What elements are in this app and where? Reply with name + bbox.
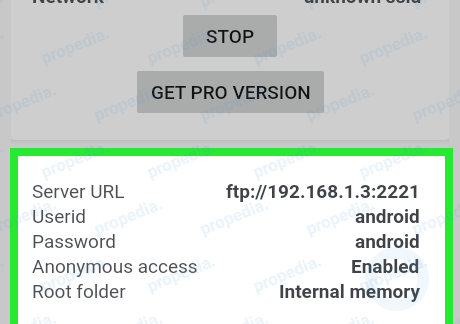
staticText: propedia. — [144, 250, 219, 296]
staticText: propedia. — [197, 0, 272, 11]
staticText: propedia. — [303, 307, 378, 324]
staticText: propedia. — [91, 307, 166, 324]
button[interactable]: Anonymous access — [32, 253, 420, 278]
staticText: Root folder — [32, 280, 126, 302]
staticText: propedia. — [409, 307, 460, 324]
staticText: Userid — [32, 205, 86, 227]
staticText: propedia. — [0, 307, 60, 324]
button[interactable]: Userid — [32, 203, 420, 228]
button[interactable]: Root folder — [32, 278, 420, 303]
staticText: propedia. — [356, 250, 431, 296]
staticText: Network — [32, 0, 104, 7]
staticText: propedia. — [91, 193, 166, 239]
staticText: propedia. — [250, 250, 325, 296]
staticText: propedia. — [91, 79, 166, 125]
staticText: GET PRO VERSION — [151, 81, 311, 103]
staticText: Anonymous access — [32, 255, 198, 277]
staticText: propedia. — [409, 0, 460, 11]
staticText: propedia. — [0, 193, 60, 239]
staticText: propedia. — [38, 250, 113, 296]
staticText: propedia. — [303, 0, 378, 11]
staticText: Enabled — [351, 255, 420, 277]
staticText: ftp://192.168.1.3:2221 — [226, 180, 420, 202]
staticText: propedia. — [144, 136, 219, 182]
staticText: “unknown ssid” — [296, 0, 429, 7]
button[interactable]: GET PRO VERSION — [137, 71, 324, 113]
staticText: propedia. — [409, 193, 460, 239]
staticText: propedia. — [197, 307, 272, 324]
staticText: android — [355, 230, 420, 252]
staticText: STOP — [206, 25, 255, 47]
button[interactable]: Server URL — [32, 178, 420, 203]
staticText: propedia. — [303, 193, 378, 239]
button[interactable]: Password — [32, 228, 420, 253]
staticText: propedia. — [38, 136, 113, 182]
staticText: propedia. — [250, 22, 325, 68]
staticText: propedia. — [144, 22, 219, 68]
button[interactable]: STOP — [183, 15, 277, 57]
staticText: Password — [32, 230, 116, 252]
staticText: propedia. — [356, 136, 431, 182]
staticText: Server URL — [32, 180, 125, 202]
staticText: propedia. — [303, 79, 378, 125]
staticText: propedia. — [91, 0, 166, 11]
staticText: propedia. — [250, 136, 325, 182]
staticText: propedia. — [0, 79, 60, 125]
staticText: propedia. — [0, 0, 60, 11]
staticText: propedia. — [409, 79, 460, 125]
staticText: Internal memory — [279, 280, 420, 302]
staticText: propedia. — [197, 193, 272, 239]
staticText: propedia. — [356, 22, 431, 68]
staticText: propedia. — [38, 22, 113, 68]
staticText: android — [355, 205, 420, 227]
staticText: propedia. — [197, 79, 272, 125]
